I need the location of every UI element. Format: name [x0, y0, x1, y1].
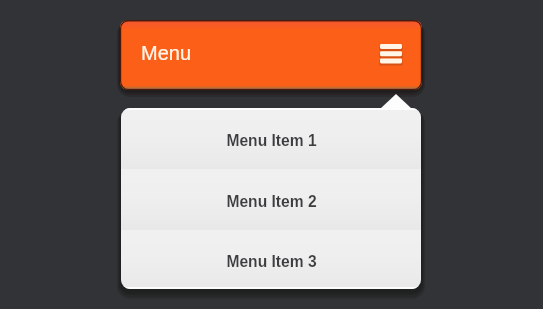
button[interactable]: Menu: [120, 20, 422, 90]
button[interactable]: Menu Item 3: [121, 230, 421, 289]
staticText: Menu Item 2: [226, 193, 317, 210]
staticText: Menu Item 3: [226, 253, 317, 270]
staticText: Menu Item 1: [226, 132, 317, 149]
button[interactable]: Open navigation menu: [380, 44, 402, 63]
staticText: Menu: [141, 42, 192, 64]
button[interactable]: Menu Item 1: [121, 108, 421, 169]
button[interactable]: Menu Item 2: [121, 169, 421, 230]
